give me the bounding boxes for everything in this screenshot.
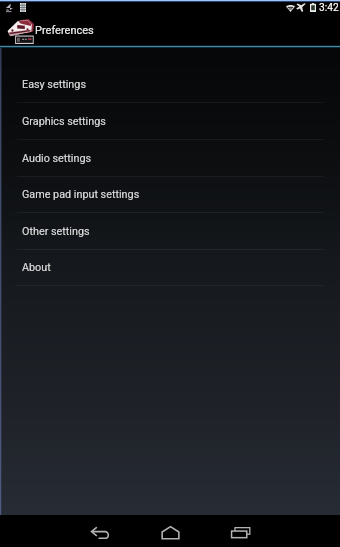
staticText: Graphics settings [22, 115, 106, 128]
staticText: Audio settings [22, 152, 92, 165]
button[interactable]: Audio settings [0, 140, 340, 177]
staticText: Easy settings [22, 78, 86, 91]
button[interactable]: Home [148, 518, 192, 547]
button[interactable]: Preferences [0, 15, 340, 45]
staticText: About [22, 261, 51, 274]
button[interactable]: Recent apps [218, 518, 262, 547]
staticText: 3:42 [319, 2, 339, 14]
button[interactable]: Back [78, 518, 122, 547]
button[interactable]: About [0, 250, 340, 286]
button[interactable]: Other settings [0, 213, 340, 250]
staticText: Preferences [35, 24, 94, 37]
staticText: Other settings [22, 225, 90, 238]
staticText: Game pad input settings [22, 188, 140, 201]
button[interactable]: Easy settings [0, 66, 340, 103]
button[interactable]: Graphics settings [0, 103, 340, 140]
button[interactable]: Game pad input settings [0, 177, 340, 213]
